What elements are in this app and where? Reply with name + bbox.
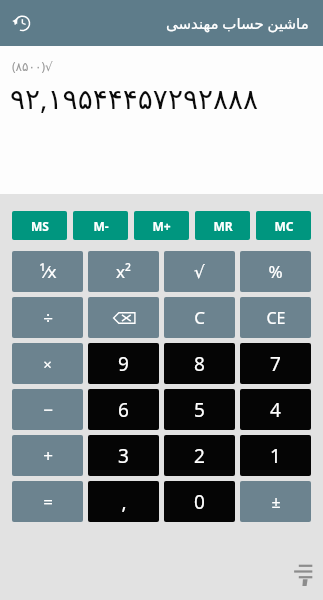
button[interactable]: 0: [164, 481, 235, 522]
staticText: √: [194, 262, 205, 282]
staticText: 3: [118, 443, 129, 469]
button[interactable]: ×: [12, 343, 83, 384]
button[interactable]: +: [12, 435, 83, 476]
staticText: 6: [118, 397, 129, 423]
button[interactable]: ÷: [12, 297, 83, 338]
staticText: −: [43, 398, 53, 421]
button[interactable]: 5: [164, 389, 235, 430]
button[interactable]: 2: [164, 435, 235, 476]
button[interactable]: CE: [240, 297, 311, 338]
button[interactable]: MR: [195, 211, 250, 240]
staticText: 2: [194, 443, 205, 469]
staticText: +: [43, 444, 53, 467]
staticText: x²: [116, 260, 131, 283]
staticText: 9: [118, 351, 129, 377]
staticText: ماشین حساب مهندسی: [166, 13, 309, 33]
button[interactable]: −: [12, 389, 83, 430]
staticText: ±: [271, 491, 281, 513]
staticText: 7: [270, 351, 281, 377]
button[interactable]: %: [240, 251, 311, 292]
button[interactable]: 4: [240, 389, 311, 430]
staticText: 5: [194, 397, 205, 423]
button[interactable]: M-: [73, 211, 128, 240]
button[interactable]: M+: [134, 211, 189, 240]
staticText: 4: [270, 397, 281, 423]
staticText: =: [43, 490, 53, 513]
staticText: M+: [152, 218, 171, 234]
button[interactable]: MC: [256, 211, 311, 240]
button[interactable]: 9: [88, 343, 159, 384]
staticText: CE: [266, 307, 286, 329]
staticText: ÷: [43, 306, 53, 329]
button[interactable]: Backspace: [88, 297, 159, 338]
button[interactable]: History: [8, 9, 36, 37]
button[interactable]: MS: [12, 211, 67, 240]
button[interactable]: 7: [240, 343, 311, 384]
button[interactable]: =: [12, 481, 83, 522]
staticText: ۹۲,۱۹۵۴۴۴۵۷۲۹۲۸۸۸: [10, 79, 259, 117]
staticText: MR: [213, 218, 233, 234]
staticText: C: [194, 306, 205, 329]
staticText: %: [268, 260, 283, 283]
staticText: 1: [270, 443, 281, 469]
button[interactable]: 3: [88, 435, 159, 476]
staticText: (۸۵۰۰)√: [12, 58, 53, 74]
button[interactable]: 1: [240, 435, 311, 476]
staticText: 0: [194, 489, 205, 515]
button[interactable]: ±: [240, 481, 311, 522]
button[interactable]: 6: [88, 389, 159, 430]
staticText: ¹⁄x: [39, 260, 57, 283]
button[interactable]: C: [164, 297, 235, 338]
button[interactable]: √: [164, 251, 235, 292]
button[interactable]: x²: [88, 251, 159, 292]
staticText: MS: [31, 218, 49, 234]
staticText: MC: [274, 218, 294, 234]
staticText: M-: [93, 218, 109, 234]
button[interactable]: ,: [88, 481, 159, 522]
staticText: ,: [121, 489, 127, 515]
button[interactable]: ¹⁄x: [12, 251, 83, 292]
staticText: ×: [43, 354, 52, 374]
staticText: 8: [194, 351, 205, 377]
button[interactable]: 8: [164, 343, 235, 384]
